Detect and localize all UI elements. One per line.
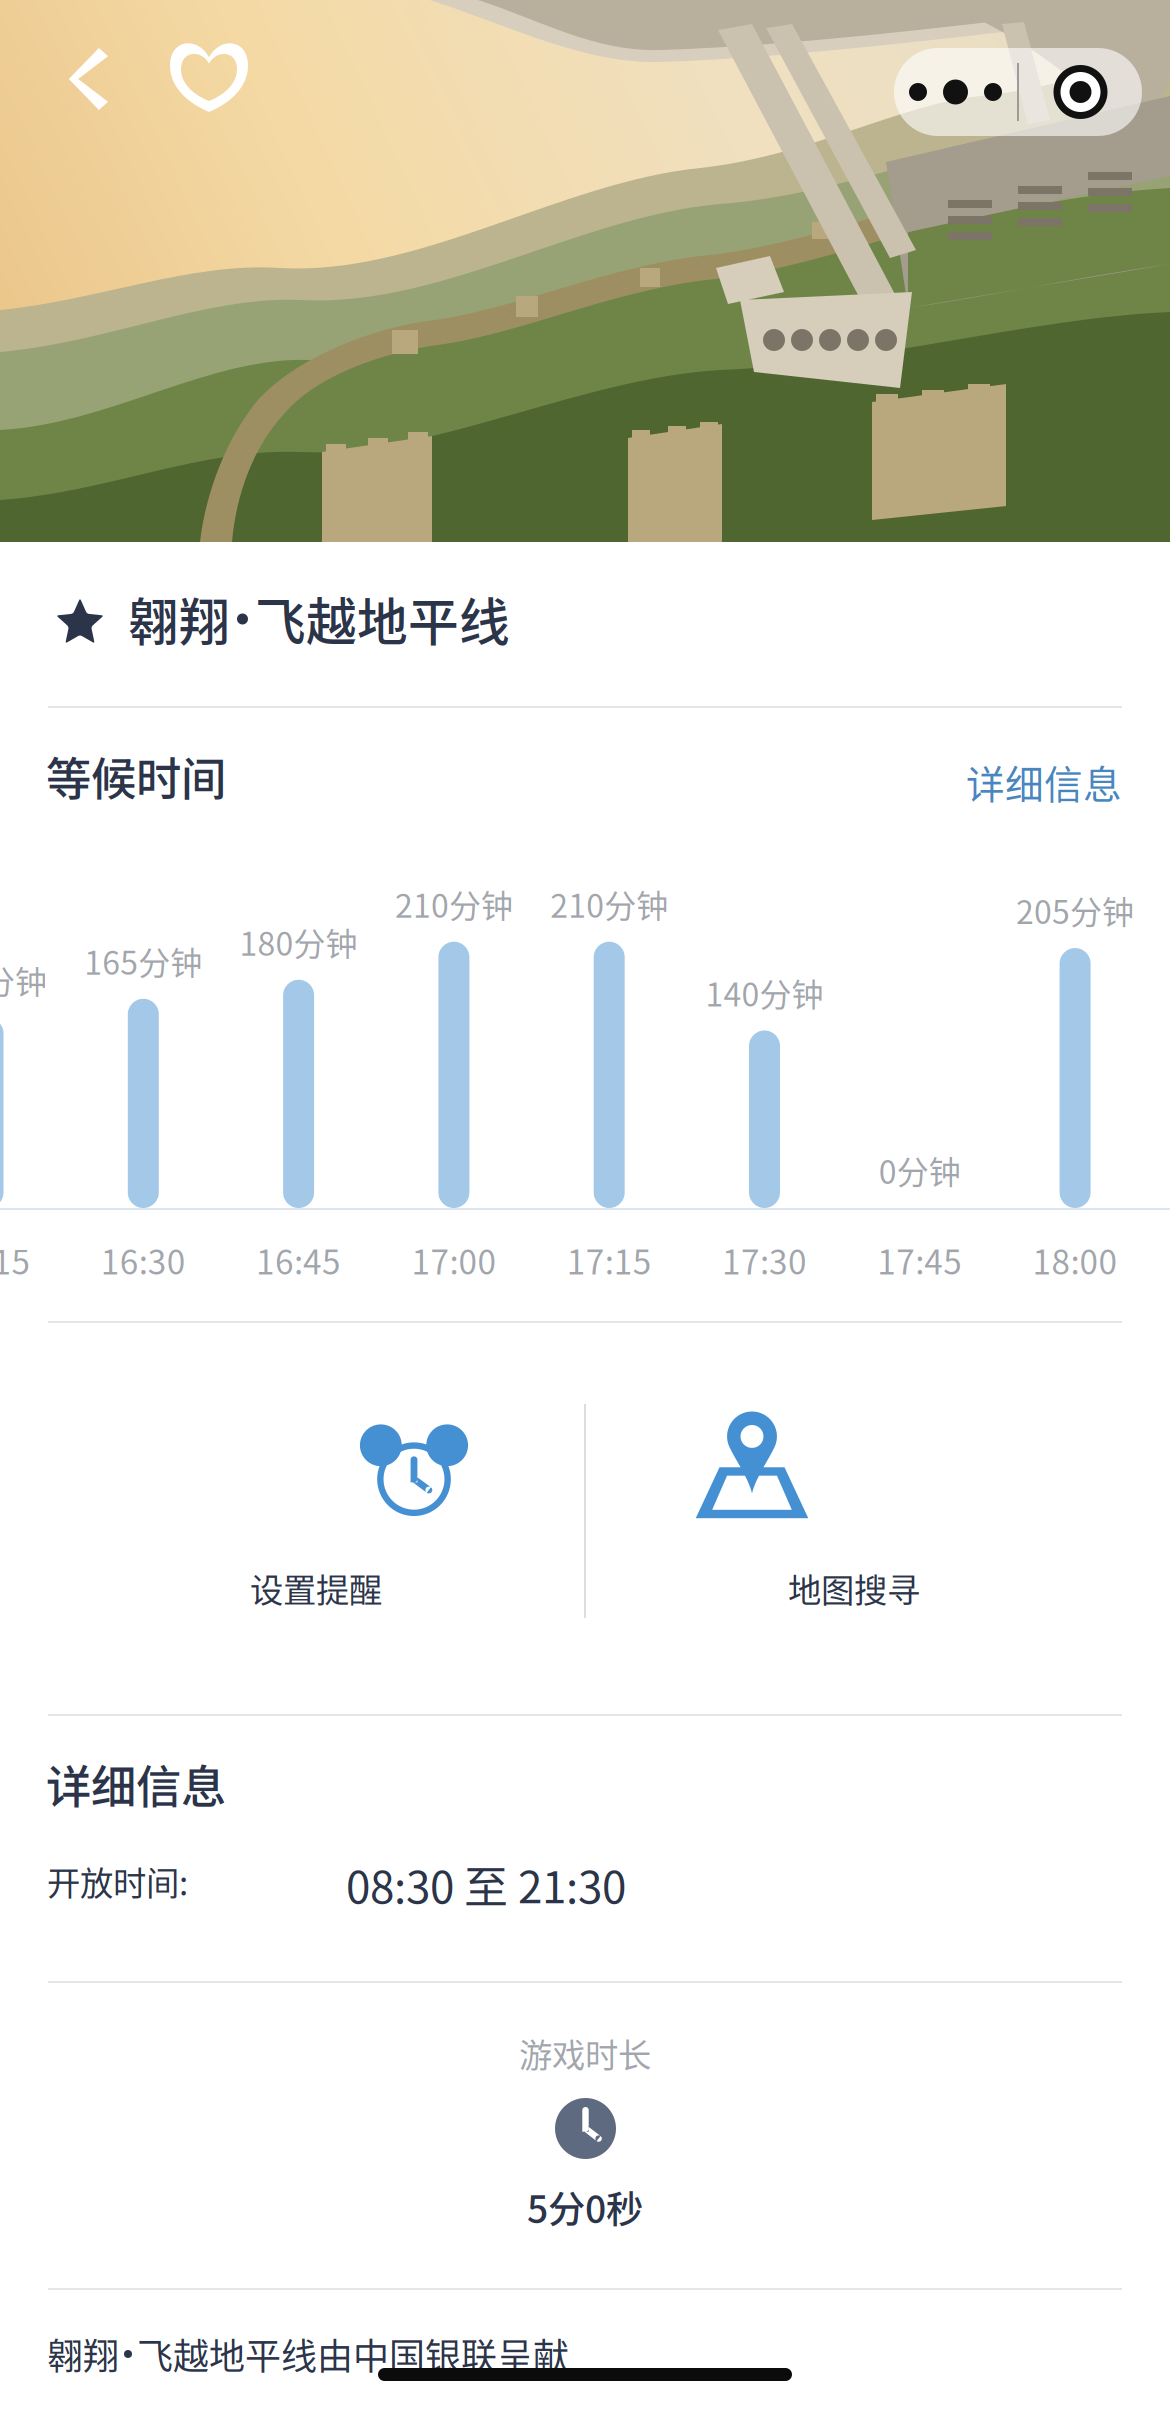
button[interactable]: 设置提醒 xyxy=(48,1398,584,1648)
button[interactable]: 更多 xyxy=(894,48,1017,136)
staticText: 210分钟 xyxy=(550,881,668,927)
staticText: 150分钟 xyxy=(0,957,47,1003)
staticText: 设置提醒 xyxy=(250,1564,382,1612)
staticText: 17:45 xyxy=(877,1236,962,1284)
staticText: 0分钟 xyxy=(879,1147,961,1193)
staticText: 详细信息 xyxy=(966,754,1122,810)
staticText: 16:45 xyxy=(256,1236,341,1284)
staticText: 开放时间: xyxy=(47,1857,188,1905)
staticText: 详细信息 xyxy=(46,1751,226,1817)
staticText: 地图搜寻 xyxy=(788,1564,920,1612)
staticText: 140分钟 xyxy=(705,969,823,1016)
button[interactable]: 收藏 xyxy=(146,18,272,136)
staticText: 165分钟 xyxy=(84,938,202,984)
staticText: 翱翔 xyxy=(47,2328,119,2380)
staticText: 205分钟 xyxy=(1016,887,1134,933)
button[interactable]: 返回 xyxy=(42,20,136,138)
staticText: 18:00 xyxy=(1033,1236,1118,1284)
staticText: 17:30 xyxy=(722,1236,807,1284)
staticText: 等候时间 xyxy=(46,743,226,809)
staticText: 17:15 xyxy=(567,1236,652,1284)
button[interactable]: 关闭 xyxy=(1019,48,1142,136)
staticText: 飞越地平线由中国银联呈献 xyxy=(137,2328,569,2380)
staticText: 16:30 xyxy=(101,1236,186,1284)
staticText: 飞越地平线 xyxy=(255,582,510,656)
staticText: 游戏时长 xyxy=(519,2029,651,2077)
staticText: 08:30 至 21:30 xyxy=(346,1852,626,1916)
staticText: 17:00 xyxy=(411,1236,496,1284)
staticText: 翱翔 xyxy=(128,582,230,656)
button[interactable]: 地图搜寻 xyxy=(586,1398,1122,1648)
staticText: 210分钟 xyxy=(395,881,513,927)
staticText: 16:15 xyxy=(0,1236,30,1284)
button[interactable]: 详细信息 xyxy=(822,750,1122,814)
staticText: 180分钟 xyxy=(240,919,358,965)
staticText: 5分0秒 xyxy=(527,2180,643,2234)
